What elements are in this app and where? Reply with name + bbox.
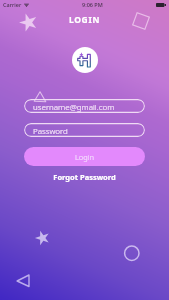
button[interactable]: Login xyxy=(24,147,145,166)
staticText: Login xyxy=(75,152,94,162)
button[interactable]: username@gmail.com xyxy=(24,99,145,113)
other: Wi-Fi xyxy=(24,3,29,7)
staticText: Password xyxy=(33,125,68,136)
staticText: LOGIN xyxy=(0,14,169,26)
other: App logo xyxy=(72,47,98,73)
button[interactable]: Forgot Password xyxy=(24,172,145,182)
button[interactable]: Password xyxy=(24,123,145,137)
staticText: username@gmail.com xyxy=(33,101,115,112)
staticText: Carrier xyxy=(3,1,22,8)
staticText: 9:06 PM xyxy=(82,1,103,8)
